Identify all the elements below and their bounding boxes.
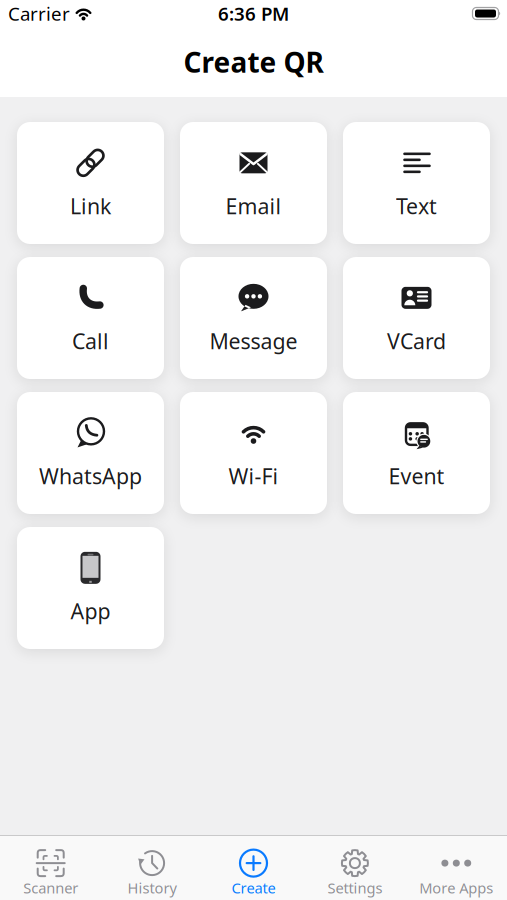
staticText: Message — [209, 327, 297, 355]
staticText: WhatsApp — [39, 462, 142, 490]
button[interactable]: History — [101, 837, 203, 899]
button[interactable]: Link — [17, 122, 164, 244]
staticText: History — [128, 878, 177, 898]
staticText: More Apps — [419, 878, 493, 898]
button[interactable]: Event — [343, 392, 490, 514]
button[interactable]: VCard — [343, 257, 490, 379]
button[interactable]: Text — [343, 122, 490, 244]
button[interactable]: Email — [180, 122, 327, 244]
staticText: Call — [72, 327, 109, 355]
button[interactable]: Call — [17, 257, 164, 379]
staticText: Settings — [327, 878, 382, 898]
staticText: Event — [388, 462, 444, 490]
staticText: Scanner — [23, 878, 78, 898]
staticText: 6:36 PM — [218, 1, 289, 26]
button[interactable]: Create — [203, 837, 304, 899]
staticText: Email — [225, 192, 281, 220]
button[interactable]: More Apps — [406, 837, 507, 899]
staticText: Link — [70, 192, 111, 220]
staticText: Create — [231, 878, 275, 898]
button[interactable]: Settings — [304, 837, 406, 899]
button[interactable]: Wi-Fi — [180, 392, 327, 514]
staticText: VCard — [387, 327, 446, 355]
button[interactable]: WhatsApp — [17, 392, 164, 514]
staticText: App — [70, 597, 110, 625]
staticText: Text — [396, 192, 437, 220]
staticText: Carrier — [8, 1, 70, 26]
button[interactable]: App — [17, 527, 164, 649]
button[interactable]: Message — [180, 257, 327, 379]
button[interactable]: Scanner — [0, 837, 101, 899]
staticText: Wi-Fi — [228, 462, 278, 490]
staticText: Create QR — [183, 43, 323, 81]
